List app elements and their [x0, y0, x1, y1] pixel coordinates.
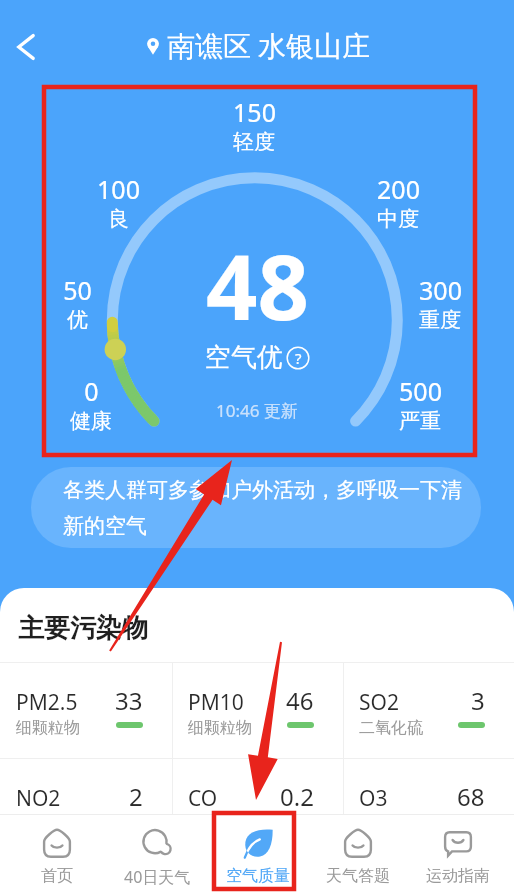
staticText: 主要污染物 — [18, 612, 148, 645]
button[interactable]: 空气质量 — [208, 815, 308, 892]
button[interactable]: NO2 — [0, 759, 172, 854]
staticText: 48 — [206, 224, 309, 347]
staticText: 细颗粒物 — [188, 718, 252, 738]
staticText: 天气答题 — [326, 866, 390, 886]
staticText: PM2.5 — [16, 688, 78, 717]
button[interactable]: 运动指南 — [408, 815, 508, 892]
staticText: 40日天气 — [124, 866, 191, 888]
button[interactable]: Back — [4, 25, 48, 69]
staticText: 150 — [233, 95, 276, 129]
staticText: 空气优 — [205, 341, 283, 374]
button[interactable]: 各类人群可多参加户外活动，多呼吸一下清新的空气 — [31, 467, 481, 548]
staticText: 3 — [471, 684, 485, 717]
staticText: 68 — [457, 780, 485, 813]
staticText: 10:46 更新 — [216, 399, 298, 422]
button[interactable]: O3 — [343, 759, 514, 854]
button[interactable]: CO — [172, 759, 343, 854]
staticText: 2 — [129, 780, 143, 813]
staticText: 良 — [108, 206, 129, 232]
staticText: 健康 — [70, 408, 112, 434]
staticText: 南谯区 水银山庄 — [167, 26, 371, 64]
button[interactable]: PM10 — [172, 663, 343, 758]
button[interactable]: 40日天气 — [107, 815, 208, 892]
staticText: 重度 — [419, 307, 461, 333]
button[interactable]: PM2.5 — [0, 663, 172, 758]
staticText: 细颗粒物 — [16, 718, 80, 738]
staticText: ? — [295, 348, 302, 368]
staticText: 二氧化氮 — [16, 814, 80, 834]
staticText: 各类人群可多参加户外活动，多呼吸一下清新的空气 — [63, 477, 465, 539]
staticText: 300 — [419, 273, 462, 307]
staticText: CO — [188, 784, 218, 813]
staticText: 33 — [115, 684, 143, 717]
staticText: 严重 — [399, 408, 441, 434]
staticText: 轻度 — [233, 129, 275, 155]
staticText: 一氧化碳 — [188, 814, 252, 834]
staticText: 100 — [97, 172, 140, 206]
button[interactable]: SO2 — [343, 663, 514, 758]
button[interactable]: 空气质量说明 — [286, 346, 310, 370]
staticText: 臭氧 — [359, 814, 391, 834]
staticText: 46 — [286, 684, 314, 717]
staticText: 500 — [399, 374, 442, 408]
staticText: NO2 — [16, 784, 61, 813]
staticText: 0.2 — [280, 780, 314, 813]
staticText: 中度 — [377, 206, 419, 232]
staticText: SO2 — [359, 688, 399, 717]
button[interactable]: 首页 — [6, 815, 107, 892]
staticText: 优 — [67, 307, 88, 333]
staticText: 首页 — [41, 866, 73, 886]
button[interactable]: 天气答题 — [308, 815, 408, 892]
staticText: 0 — [84, 374, 99, 408]
staticText: PM10 — [188, 688, 244, 717]
staticText: 200 — [377, 172, 420, 206]
staticText: 空气质量 — [226, 866, 290, 886]
staticText: 二氧化硫 — [359, 718, 423, 738]
staticText: O3 — [359, 784, 388, 813]
staticText: 50 — [63, 273, 92, 307]
staticText: 运动指南 — [426, 866, 490, 886]
